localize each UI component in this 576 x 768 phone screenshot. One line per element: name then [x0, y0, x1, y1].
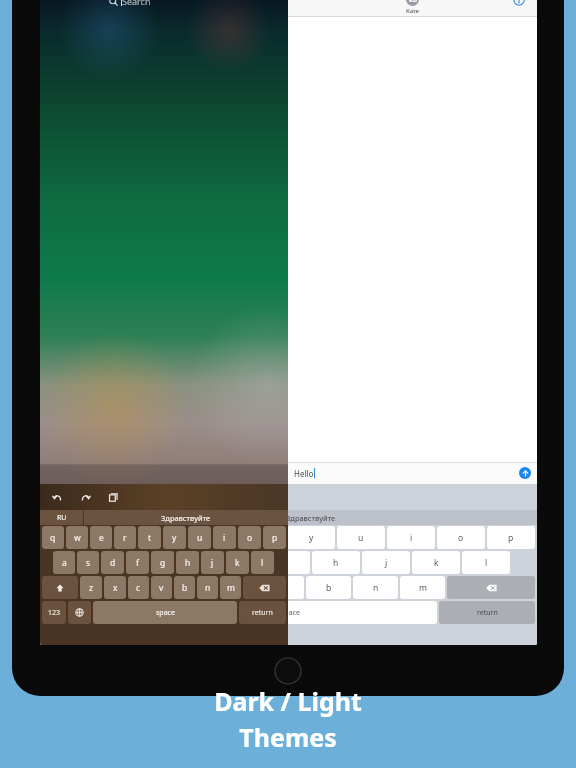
button[interactable]: q	[42, 526, 64, 549]
button[interactable]: w	[66, 526, 88, 549]
button[interactable]: k	[412, 551, 460, 574]
staticText: z	[89, 582, 93, 594]
button[interactable]: KB	[406, 0, 419, 15]
button[interactable]: h	[176, 551, 199, 574]
staticText: q	[63, 532, 69, 544]
staticText: KB	[409, 0, 417, 4]
button[interactable]: w	[91, 526, 138, 549]
button[interactable]: h	[312, 551, 360, 574]
button[interactable]: x	[104, 576, 126, 599]
button[interactable]: return	[239, 601, 286, 624]
button[interactable]: r	[114, 526, 136, 549]
button[interactable]: f	[126, 551, 149, 574]
staticText: r	[123, 532, 127, 544]
button[interactable]: v	[151, 576, 172, 599]
button[interactable]: z	[118, 576, 163, 599]
button[interactable]: Info	[513, 0, 525, 6]
button[interactable]: u	[188, 526, 211, 549]
button[interactable]: l	[251, 551, 274, 574]
button[interactable]: RU	[40, 510, 83, 525]
staticText: j	[385, 557, 388, 569]
button[interactable]: Redo	[78, 490, 92, 504]
button[interactable]: Redo	[78, 490, 92, 504]
staticText: 123	[48, 608, 61, 618]
button[interactable]: j	[362, 551, 410, 574]
button[interactable]: Shift	[42, 576, 78, 599]
staticText: 123	[60, 608, 73, 618]
button[interactable]: z	[80, 576, 102, 599]
button[interactable]: p	[487, 526, 535, 549]
button[interactable]: Send	[519, 467, 531, 479]
staticText: d	[110, 557, 116, 569]
staticText: Dark / Light	[214, 684, 362, 718]
button[interactable]: Hello	[291, 465, 534, 481]
button[interactable]: e	[140, 526, 187, 549]
button[interactable]: space	[144, 601, 437, 624]
button[interactable]: Shift	[42, 576, 116, 599]
button[interactable]: Search	[109, 0, 219, 8]
button[interactable]: Copy	[106, 490, 120, 504]
button[interactable]: a	[53, 551, 75, 574]
button[interactable]: 123	[42, 601, 66, 624]
button[interactable]: n	[197, 576, 218, 599]
button[interactable]: RU	[40, 510, 83, 525]
button[interactable]: o	[437, 526, 485, 549]
staticText: space	[156, 608, 175, 618]
staticText: o	[247, 532, 253, 544]
button[interactable]: Undo	[50, 490, 64, 504]
button[interactable]: t	[238, 526, 285, 549]
button[interactable]: Change language	[68, 601, 91, 624]
button[interactable]: Copy	[106, 490, 120, 504]
staticText: u	[197, 532, 203, 544]
button[interactable]: j	[201, 551, 224, 574]
button[interactable]: r	[189, 526, 236, 549]
staticText: j	[211, 557, 214, 569]
button[interactable]: s	[115, 551, 162, 574]
button[interactable]: f	[213, 551, 260, 574]
button[interactable]: d	[101, 551, 124, 574]
button[interactable]: Undo	[50, 490, 64, 504]
button[interactable]: t	[138, 526, 161, 549]
button[interactable]: u	[337, 526, 385, 549]
button[interactable]: x	[165, 576, 210, 599]
staticText: w	[111, 532, 118, 544]
button[interactable]: m	[220, 576, 241, 599]
staticText: RU	[57, 513, 67, 523]
button[interactable]: space	[93, 601, 237, 624]
staticText: c	[136, 582, 141, 594]
button[interactable]: m	[400, 576, 445, 599]
button[interactable]: k	[226, 551, 249, 574]
staticText: a	[62, 557, 67, 569]
button[interactable]: y	[163, 526, 186, 549]
button[interactable]: Здравствуйте	[84, 510, 537, 525]
button[interactable]: i	[387, 526, 435, 549]
button[interactable]: c	[128, 576, 149, 599]
button[interactable]: y	[287, 526, 335, 549]
button[interactable]: g	[151, 551, 174, 574]
button[interactable]: v	[259, 576, 304, 599]
button[interactable]: Backspace	[243, 576, 286, 599]
button[interactable]: 123	[42, 601, 91, 624]
button[interactable]: e	[90, 526, 112, 549]
button[interactable]: return	[439, 601, 535, 624]
button[interactable]: s	[77, 551, 99, 574]
button[interactable]: i	[213, 526, 236, 549]
button[interactable]: Backspace	[447, 576, 535, 599]
button[interactable]: l	[462, 551, 510, 574]
button[interactable]: b	[174, 576, 195, 599]
button[interactable]: Здравствуйте	[84, 510, 288, 525]
button[interactable]: n	[353, 576, 398, 599]
button[interactable]: Home	[274, 657, 302, 685]
button[interactable]: q	[42, 526, 89, 549]
button[interactable]: p	[263, 526, 286, 549]
button[interactable]: d	[164, 551, 211, 574]
button[interactable]: c	[212, 576, 257, 599]
staticText: h	[185, 557, 191, 569]
button[interactable]: b	[306, 576, 351, 599]
button[interactable]: o	[238, 526, 261, 549]
staticText: q	[50, 532, 56, 544]
button[interactable]: g	[262, 551, 310, 574]
button[interactable]: a	[66, 551, 113, 574]
